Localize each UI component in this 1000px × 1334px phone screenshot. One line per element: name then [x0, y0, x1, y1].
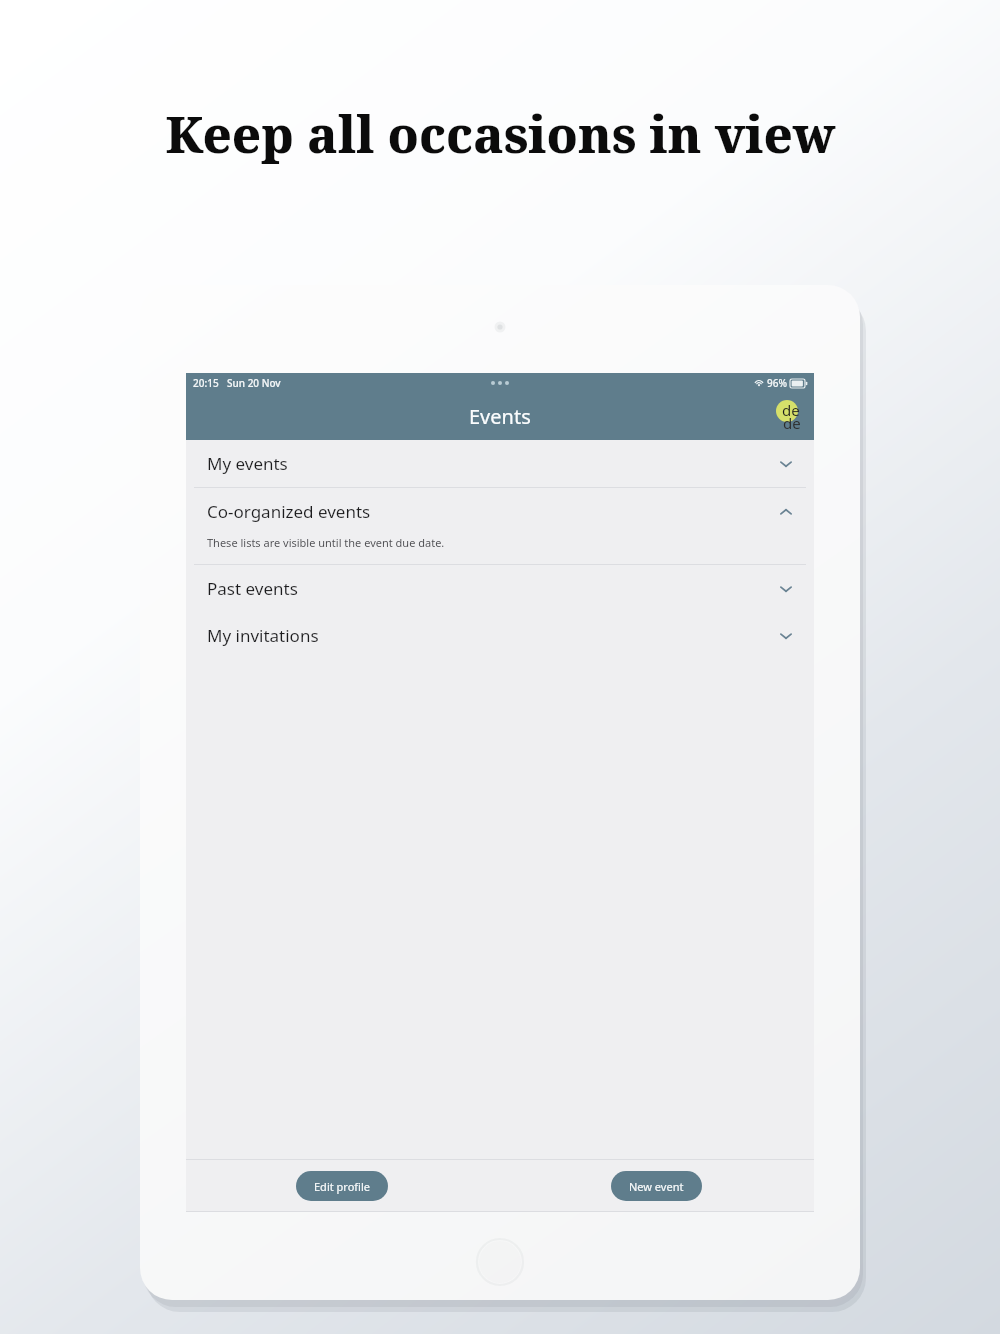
staticText: de — [783, 413, 801, 433]
button[interactable]: Co-organized events — [186, 488, 814, 535]
button[interactable]: Profile — [772, 398, 808, 434]
staticText: Past events — [207, 577, 778, 600]
staticText: de — [782, 400, 800, 420]
button[interactable]: Edit profile — [296, 1171, 388, 1201]
staticText: Events — [469, 403, 531, 430]
staticText: New event — [629, 1179, 684, 1194]
button[interactable]: Past events — [186, 565, 814, 612]
staticText: 20:15 — [193, 376, 219, 390]
staticText: Keep all occasions in view — [165, 100, 836, 168]
staticText: Co-organized events — [207, 500, 778, 523]
button[interactable]: My invitations — [186, 612, 814, 659]
button[interactable]: New event — [611, 1171, 702, 1201]
staticText: Edit profile — [314, 1179, 370, 1194]
staticText: 96% — [767, 376, 787, 390]
staticText: My events — [207, 452, 778, 475]
button[interactable]: My events — [186, 440, 814, 487]
staticText: Sun 20 Nov — [227, 376, 281, 390]
staticText: My invitations — [207, 624, 778, 647]
staticText: These lists are visible until the event … — [207, 535, 445, 550]
